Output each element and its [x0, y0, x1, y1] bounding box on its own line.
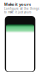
staticText: Configure all the things [4, 7, 39, 10]
staticText: Make it yours [4, 2, 31, 7]
staticText: to make it just yours [4, 10, 31, 14]
